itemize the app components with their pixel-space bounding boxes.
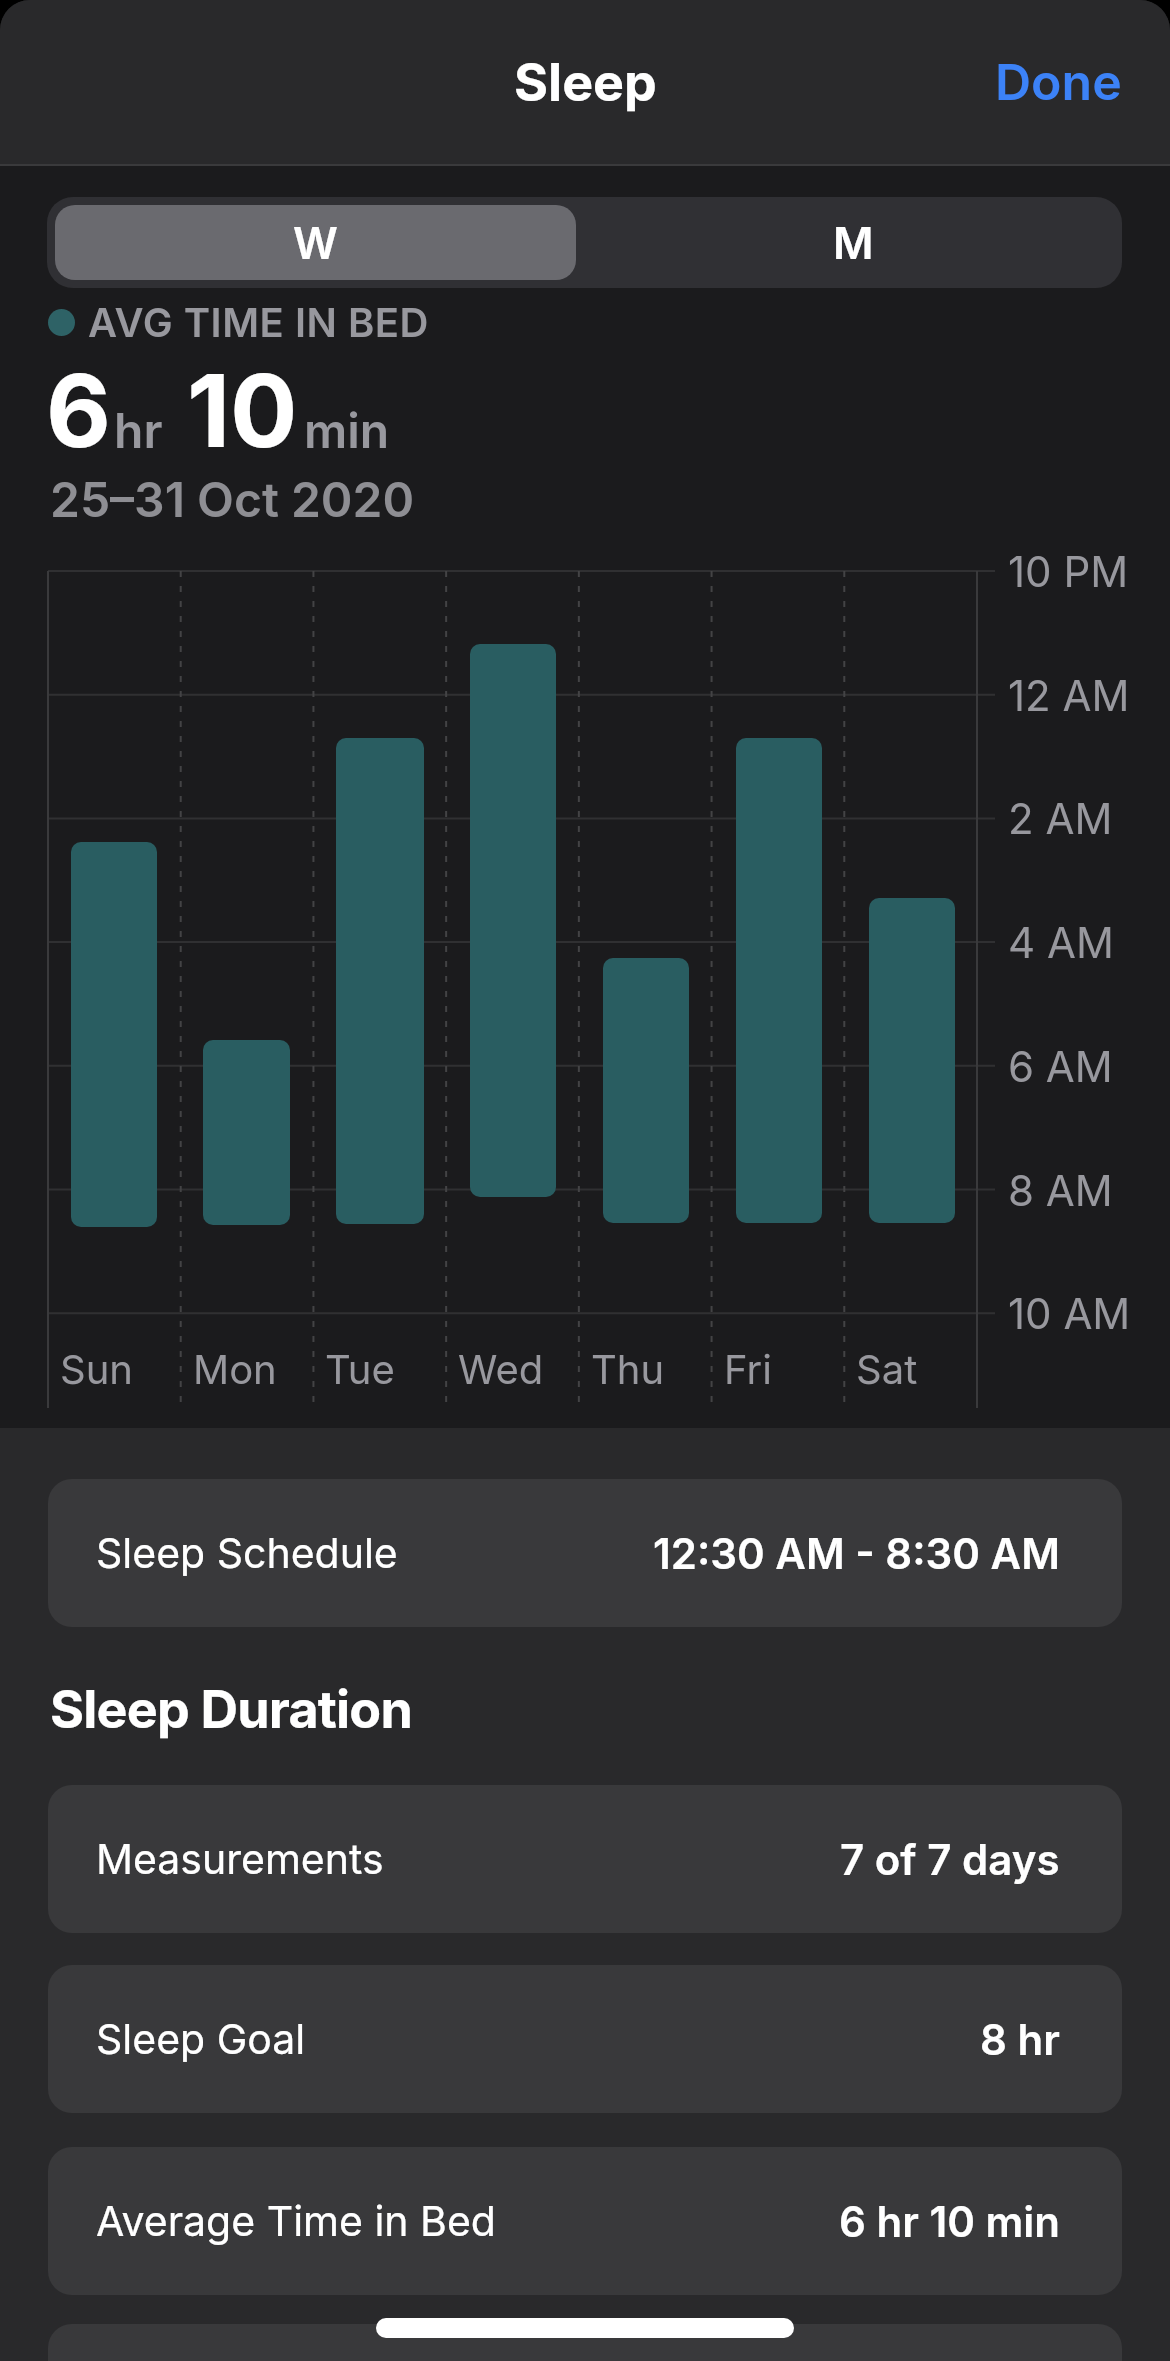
- staticText: 10 PM: [1008, 546, 1129, 597]
- staticText: 25–31 Oct 2020: [50, 470, 415, 528]
- staticText: 8 hr: [980, 2014, 1060, 2065]
- staticText: Fri: [724, 1345, 772, 1393]
- staticText: 10: [187, 350, 298, 471]
- staticText: Average Time in Bed: [96, 2196, 496, 2246]
- staticText: Sun: [60, 1345, 133, 1393]
- staticText: Sleep Schedule: [96, 1528, 398, 1578]
- staticText: 12 AM: [1008, 670, 1130, 721]
- staticText: 7 of 7 days: [840, 1834, 1060, 1885]
- staticText: W: [293, 216, 338, 269]
- button[interactable]: Sleep Goal: [48, 1965, 1122, 2113]
- staticText: Wed: [458, 1345, 544, 1393]
- button[interactable]: Done: [995, 0, 1122, 164]
- button[interactable]: Measurements: [48, 1785, 1122, 1933]
- staticText: min: [304, 401, 390, 459]
- staticText: Done: [995, 52, 1122, 112]
- button[interactable]: M: [584, 197, 1122, 288]
- staticText: 6 AM: [1008, 1041, 1113, 1092]
- staticText: 6 hr 10 min: [839, 2196, 1060, 2247]
- staticText: 8 AM: [1008, 1165, 1113, 1216]
- staticText: Measurements: [96, 1834, 384, 1884]
- staticText: Tue: [325, 1345, 395, 1393]
- staticText: 6: [46, 350, 111, 471]
- staticText: Thu: [591, 1345, 665, 1393]
- staticText: AVG TIME IN BED: [88, 298, 429, 346]
- staticText: 10 AM: [1008, 1288, 1131, 1339]
- button[interactable]: [48, 2324, 1122, 2361]
- staticText: Sleep Duration: [50, 1678, 412, 1741]
- button[interactable]: Average Time in Bed: [48, 2147, 1122, 2295]
- staticText: 12:30 AM - 8:30 AM: [653, 1528, 1060, 1579]
- staticText: 4 AM: [1008, 917, 1114, 968]
- button[interactable]: Sleep Schedule: [48, 1479, 1122, 1627]
- staticText: 2 AM: [1008, 793, 1113, 844]
- staticText: hr: [114, 401, 163, 459]
- staticText: Sat: [856, 1345, 918, 1393]
- staticText: Sleep: [514, 51, 657, 114]
- staticText: M: [833, 216, 874, 269]
- staticText: Sleep Goal: [96, 2014, 306, 2064]
- button[interactable]: W: [47, 197, 584, 288]
- staticText: Mon: [193, 1345, 277, 1393]
